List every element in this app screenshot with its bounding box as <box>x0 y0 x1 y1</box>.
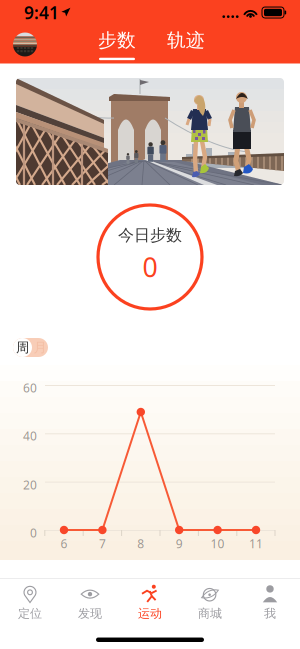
staticText: 我 <box>264 606 276 621</box>
button[interactable]: 我 <box>240 581 300 623</box>
staticText: 运动 <box>138 606 162 621</box>
staticText: 月 <box>33 339 46 356</box>
button[interactable]: Profile <box>13 32 37 56</box>
staticText: 0 <box>142 249 157 284</box>
staticText: 周 <box>16 339 29 356</box>
staticText: 11 <box>249 535 263 551</box>
staticText: 发现 <box>78 606 102 621</box>
staticText: 10 <box>211 535 225 551</box>
staticText: 8 <box>137 535 144 551</box>
button[interactable]: 运动 <box>120 581 180 623</box>
button[interactable]: 周 <box>13 338 48 357</box>
staticText: 轨迹 <box>167 29 205 52</box>
staticText: 9:41 <box>24 1 59 24</box>
staticText: 6 <box>60 535 67 551</box>
button[interactable]: 轨迹 <box>159 29 213 60</box>
staticText: 步数 <box>98 29 136 52</box>
staticText: 定位 <box>18 606 42 621</box>
button[interactable]: 定位 <box>0 581 60 623</box>
staticText: 20 <box>23 477 37 493</box>
staticText: 0 <box>30 525 37 541</box>
button[interactable]: 步数 <box>90 29 144 60</box>
staticText: 今日步数 <box>118 225 182 245</box>
staticText: 9 <box>176 535 183 551</box>
staticText: 40 <box>23 428 37 444</box>
button[interactable]: 商城 <box>180 581 240 623</box>
staticText: 商城 <box>198 606 222 621</box>
button[interactable]: 发现 <box>60 581 120 623</box>
staticText: 7 <box>99 535 106 551</box>
staticText: 60 <box>23 380 37 396</box>
